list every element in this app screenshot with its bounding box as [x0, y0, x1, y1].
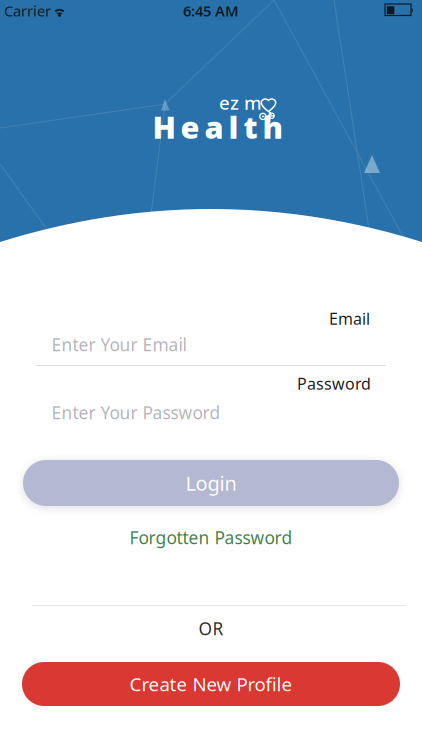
staticText: ez m — [219, 90, 262, 115]
staticText: Carrier — [4, 1, 51, 20]
staticText: OR — [198, 617, 223, 640]
button[interactable]: Forgotten Password — [129, 526, 292, 549]
staticText: Create New Profile — [129, 672, 292, 696]
staticText: Enter Your Email — [51, 333, 186, 356]
button[interactable]: Create New Profile — [22, 662, 400, 706]
staticText: Password — [297, 373, 371, 394]
staticText: Forgotten Password — [129, 526, 292, 549]
staticText: Enter Your Password — [51, 401, 220, 424]
staticText: Login — [185, 470, 236, 496]
staticText: Email — [329, 308, 370, 329]
button[interactable]: Login — [23, 460, 399, 506]
staticText: Health — [152, 106, 283, 147]
staticText: 6:45 AM — [183, 1, 239, 20]
